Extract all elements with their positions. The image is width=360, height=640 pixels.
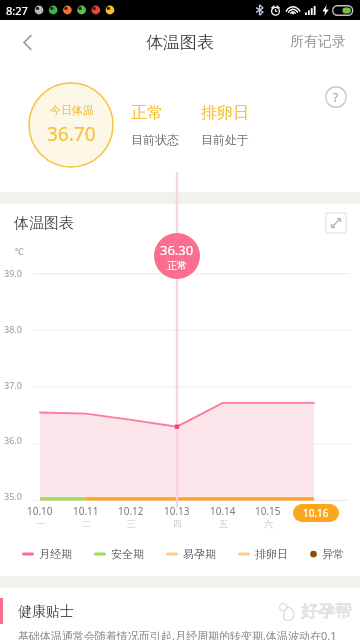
staticText: 正常 (131, 103, 163, 123)
staticText: 排卵日 (201, 103, 249, 123)
button[interactable]: 10.16 (303, 506, 329, 520)
staticText: ? (333, 89, 339, 105)
staticText: 8:27 (6, 3, 28, 18)
staticText: 今日体温 (50, 103, 94, 117)
staticText: 38.0 (4, 323, 22, 335)
staticText: 所有记录 (290, 33, 346, 51)
staticText: 六 (264, 518, 273, 529)
staticText: 四 (173, 518, 182, 529)
staticText: 36.70 (47, 121, 96, 147)
staticText: 排卵日 (255, 547, 288, 561)
staticText: 基础体温通常会随着情况而引起,月经周期的转变期,体温波动在0.1度 (18, 628, 346, 640)
staticText: 三 (127, 518, 136, 529)
staticText: 10.14 (210, 504, 236, 518)
staticText: 正常 (167, 259, 187, 272)
staticText: 10.10 (27, 504, 53, 518)
button[interactable]: Help (325, 86, 347, 108)
staticText: 36.0 (4, 434, 22, 446)
staticText: 39.0 (4, 267, 22, 279)
staticText: 体温图表 (146, 32, 214, 53)
staticText: 10.16 (303, 506, 329, 520)
button[interactable]: Fullscreen (326, 213, 346, 233)
staticText: 10.12 (118, 504, 144, 518)
staticText: 健康贴士 (18, 603, 74, 621)
staticText: 35.0 (4, 490, 22, 502)
staticText: 目前处于 (201, 132, 249, 147)
staticText: 好孕帮 (301, 601, 352, 622)
staticText: 10.15 (255, 504, 281, 518)
staticText: 安全期 (111, 547, 144, 561)
staticText: 月经期 (39, 547, 72, 561)
staticText: 10.11 (73, 504, 99, 518)
staticText: 二 (82, 518, 91, 529)
button[interactable]: 所有记录 (276, 20, 360, 64)
staticText: 37.0 (4, 379, 22, 391)
staticText: 10.13 (164, 504, 190, 518)
staticText: 五 (219, 518, 228, 529)
button[interactable]: Back (0, 20, 54, 64)
staticText: 一 (36, 518, 45, 529)
staticText: ℃ (15, 245, 24, 257)
staticText: 目前状态 (131, 132, 179, 147)
staticText: 异常 (322, 547, 344, 561)
staticText: 36.30 (160, 241, 194, 259)
button[interactable]: 36.30 (154, 233, 200, 279)
staticText: 易孕期 (183, 547, 216, 561)
button[interactable]: 今日体温 (28, 82, 114, 168)
staticText: 体温图表 (14, 214, 74, 233)
